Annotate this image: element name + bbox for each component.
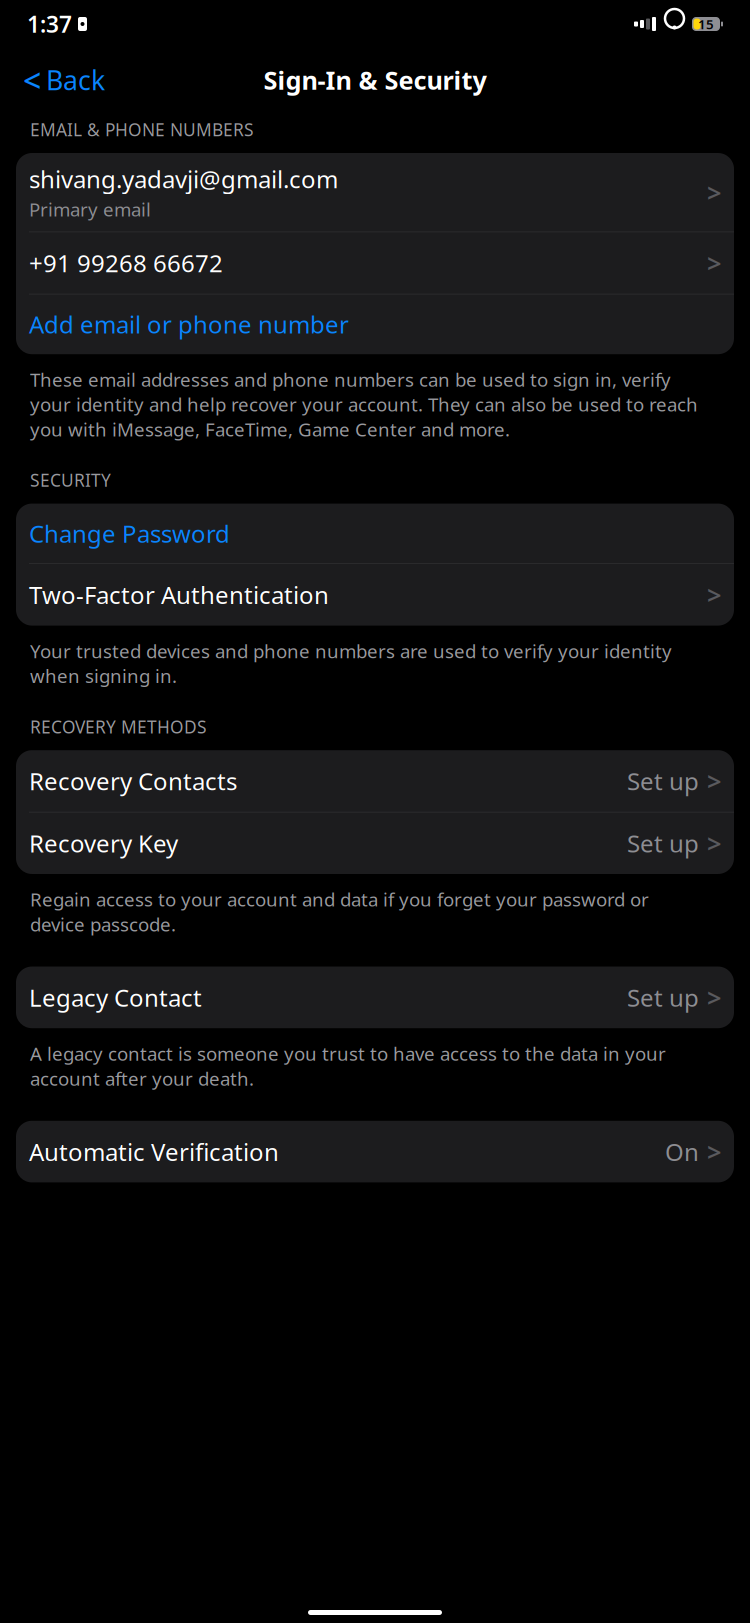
staticText: < <box>23 59 41 101</box>
staticText: RECOVERY METHODS <box>30 715 207 738</box>
staticText: Add email or phone number <box>29 308 349 340</box>
staticText: A legacy contact is someone you trust to… <box>30 1041 666 1091</box>
staticText: > <box>707 1135 721 1168</box>
staticText: 15 <box>698 15 714 33</box>
staticText: On <box>665 1136 699 1168</box>
staticText: > <box>707 764 721 798</box>
staticText: Recovery Contacts <box>29 765 237 797</box>
staticText: Change Password <box>29 518 230 549</box>
staticText: Set up <box>627 981 699 1013</box>
staticText: Sign-In & Security <box>263 63 486 97</box>
staticText: Legacy Contact <box>29 981 202 1013</box>
staticText: > <box>707 826 721 860</box>
staticText: +91 99268 66672 <box>29 247 223 279</box>
button[interactable]: +91 99268 66672 <box>16 232 734 294</box>
staticText: SECURITY <box>30 469 111 492</box>
staticText: Recovery Key <box>29 827 178 859</box>
staticText: > <box>707 246 721 280</box>
staticText: > <box>707 578 721 612</box>
staticText: Primary email <box>29 197 151 222</box>
button[interactable]: Recovery Key <box>16 812 734 874</box>
staticText: Back <box>46 62 105 98</box>
staticText: Set up <box>627 765 699 797</box>
button[interactable]: Automatic Verification <box>16 1121 734 1182</box>
staticText: EMAIL & PHONE NUMBERS <box>30 118 254 141</box>
button[interactable]: Add email or phone number <box>16 294 734 354</box>
button[interactable]: < <box>15 53 113 107</box>
staticText: shivang.yadavji@gmail.com <box>29 163 338 195</box>
button[interactable]: shivang.yadavji@gmail.com <box>16 153 734 232</box>
button[interactable]: Legacy Contact <box>16 967 734 1028</box>
staticText: Set up <box>627 827 699 859</box>
staticText: > <box>707 175 721 209</box>
staticText: Regain access to your account and data i… <box>30 887 649 937</box>
staticText: Your trusted devices and phone numbers a… <box>30 639 672 688</box>
button[interactable]: Change Password <box>16 504 734 563</box>
staticText: > <box>707 981 721 1014</box>
staticText: These email addresses and phone numbers … <box>30 367 698 442</box>
staticText: 1:37 <box>27 9 72 39</box>
button[interactable]: Two-Factor Authentication <box>16 564 734 626</box>
staticText: Two-Factor Authentication <box>29 579 329 611</box>
staticText: Automatic Verification <box>29 1136 279 1168</box>
button[interactable]: Recovery Contacts <box>16 750 734 812</box>
